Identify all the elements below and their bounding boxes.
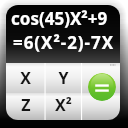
staticText: Y	[58, 67, 69, 89]
button[interactable]: X²	[45, 93, 82, 120]
staticText: Z	[21, 94, 31, 116]
button[interactable]: X	[6, 63, 45, 93]
staticText: cos(45)X²+9	[11, 7, 108, 30]
button[interactable]: Z	[6, 93, 45, 120]
staticText: X²	[55, 94, 72, 116]
button[interactable]: Y	[45, 63, 82, 93]
button[interactable]: Equals	[88, 73, 116, 101]
staticText: =6(X²-2)-7X	[13, 31, 114, 54]
staticText: X	[20, 67, 31, 89]
